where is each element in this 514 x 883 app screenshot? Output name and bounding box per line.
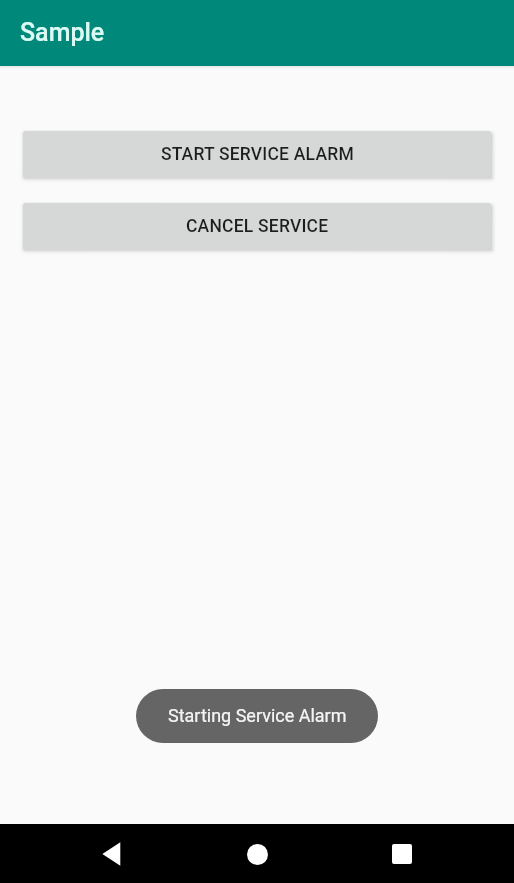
button[interactable]: CANCEL SERVICE <box>23 203 491 250</box>
button[interactable]: Back <box>87 830 135 878</box>
staticText: Starting Service Alarm <box>168 705 347 726</box>
staticText: START SERVICE ALARM <box>161 144 354 165</box>
staticText: CANCEL SERVICE <box>186 216 329 237</box>
button[interactable]: Home <box>233 830 281 878</box>
button[interactable]: START SERVICE ALARM <box>23 131 491 178</box>
staticText: Sample <box>20 18 105 47</box>
button[interactable]: Recent apps <box>378 830 426 878</box>
